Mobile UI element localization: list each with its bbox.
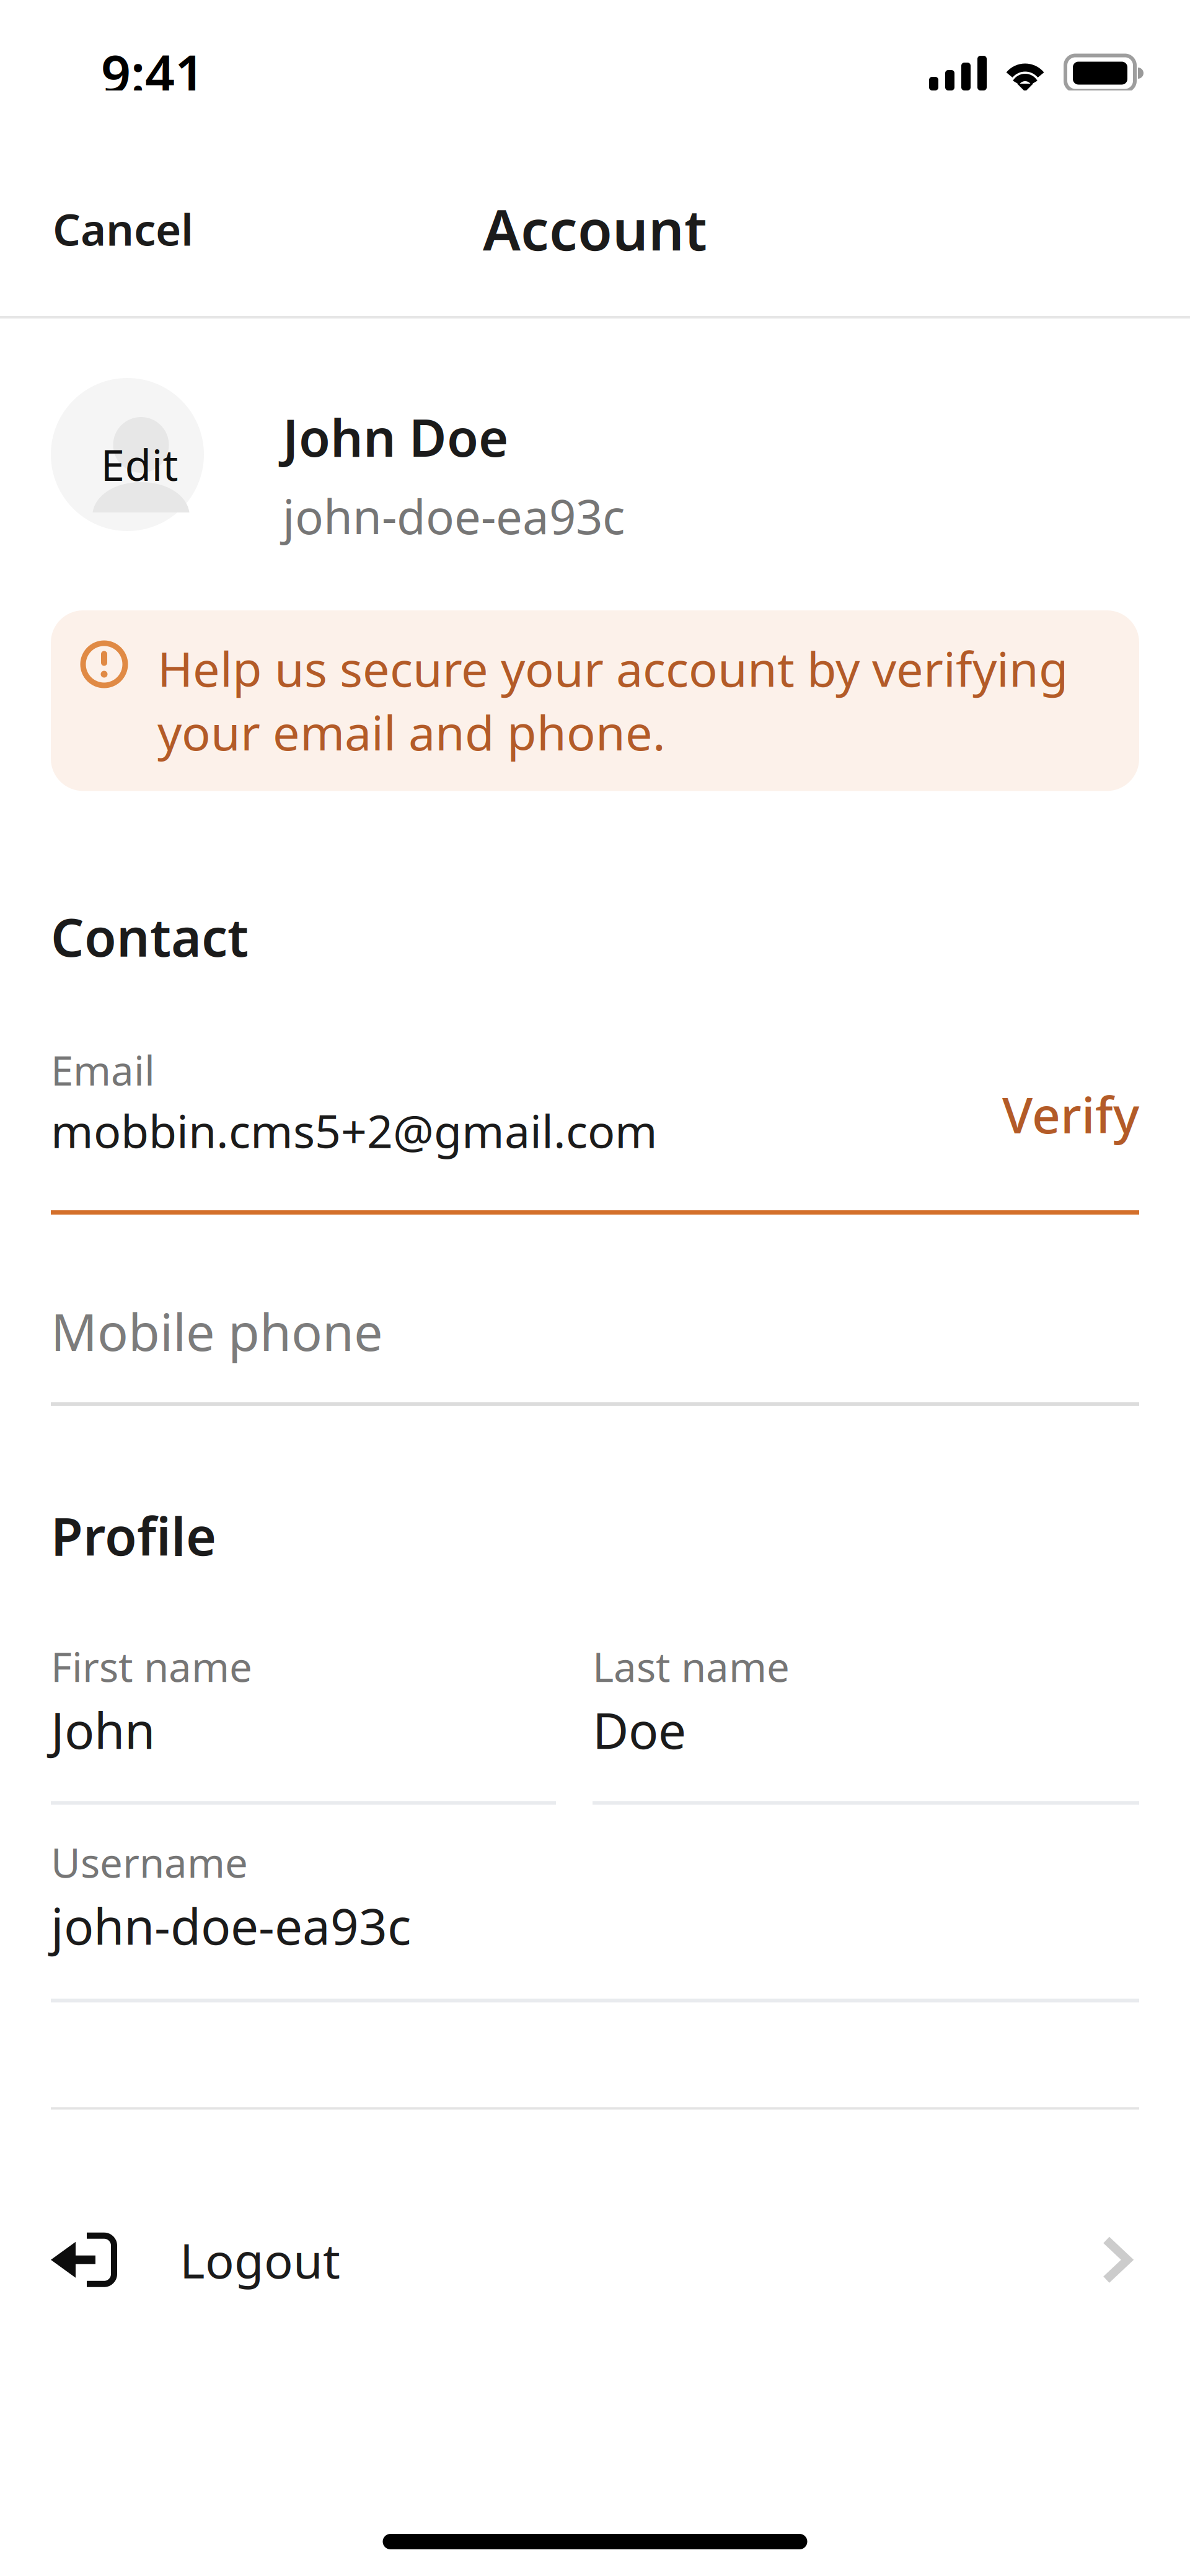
staticText: Cancel (53, 200, 193, 258)
staticText: Edit (101, 436, 178, 493)
staticText: mobbin.cms5+2@gmail.com (51, 1100, 658, 1161)
staticText: john-doe-ea93c (283, 485, 625, 547)
staticText: Help us secure your account by verifying… (157, 636, 1069, 764)
button[interactable]: Verify (986, 1094, 1139, 1161)
staticText: Account (483, 191, 707, 266)
button[interactable]: Cancel (0, 182, 218, 275)
staticText: john-doe-ea93c (51, 1893, 411, 1958)
button[interactable]: Username (51, 1835, 1139, 1958)
staticText: Last name (593, 1639, 790, 1693)
staticText: Doe (593, 1697, 686, 1763)
staticText: Contact (51, 902, 249, 971)
staticText: Mobile phone (51, 1297, 383, 1365)
staticText: John Doe (283, 403, 508, 471)
staticText: 9:41 (101, 39, 205, 108)
button[interactable]: Edit profile photo (51, 378, 204, 531)
staticText: First name (51, 1639, 252, 1693)
button[interactable]: First name (51, 1639, 556, 1763)
button[interactable]: Email (51, 1043, 986, 1161)
staticText: Username (51, 1835, 248, 1889)
staticText: Verify (1002, 1081, 1139, 1147)
staticText: Email (51, 1043, 155, 1097)
staticText: Profile (51, 1501, 216, 1570)
staticText: Logout (180, 2228, 340, 2292)
button[interactable]: Last name (593, 1639, 1139, 1763)
button[interactable]: Logout (0, 2193, 1190, 2326)
staticText: John (51, 1697, 155, 1763)
button[interactable]: Mobile phone (51, 1297, 1139, 1406)
